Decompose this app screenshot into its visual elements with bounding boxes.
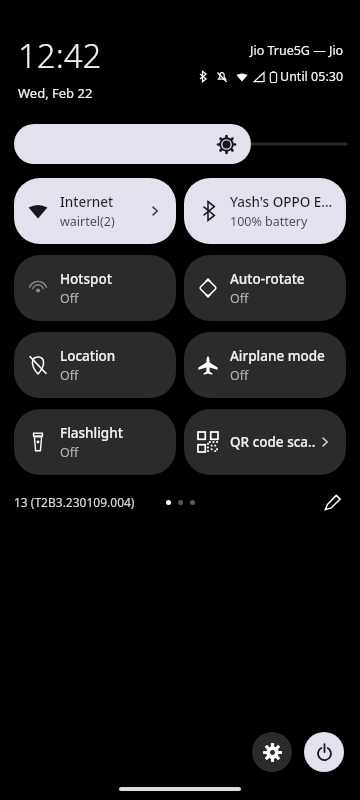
staticText: Off: [230, 290, 249, 307]
button[interactable]: Power: [304, 732, 344, 772]
staticText: Until 05:30: [280, 68, 344, 85]
staticText: 100% battery: [230, 213, 308, 230]
staticText: Internet: [60, 193, 114, 211]
button[interactable]: Internet: [14, 178, 176, 244]
button[interactable]: Location: [14, 332, 176, 398]
button[interactable]: QR code sca..: [184, 409, 346, 475]
staticText: QR code sca..: [230, 433, 316, 451]
button[interactable]: Hotspot: [14, 255, 176, 321]
staticText: Off: [60, 444, 79, 461]
button[interactable]: [14, 124, 346, 164]
button[interactable]: Settings: [252, 732, 292, 772]
staticText: 13 (T2B3.230109.004): [14, 494, 135, 510]
staticText: Auto-rotate: [230, 270, 305, 288]
button[interactable]: Auto-rotate: [184, 255, 346, 321]
staticText: Wed, Feb 22: [18, 84, 93, 102]
staticText: Location: [60, 347, 116, 365]
staticText: Jio True5G — Jio: [250, 42, 344, 59]
button[interactable]: Yash's OPPO En..: [184, 178, 346, 244]
staticText: Hotspot: [60, 270, 112, 288]
button[interactable]: Edit tiles: [318, 488, 346, 516]
staticText: Flashlight: [60, 424, 123, 442]
staticText: Off: [230, 367, 249, 384]
staticText: Yash's OPPO En..: [230, 193, 336, 211]
staticText: wairtel(2): [60, 213, 115, 230]
button[interactable]: Flashlight: [14, 409, 176, 475]
staticText: Airplane mode: [230, 347, 325, 365]
staticText: 12:42: [18, 33, 102, 78]
staticText: Off: [60, 290, 79, 307]
button[interactable]: Airplane mode: [184, 332, 346, 398]
staticText: Off: [60, 367, 79, 384]
